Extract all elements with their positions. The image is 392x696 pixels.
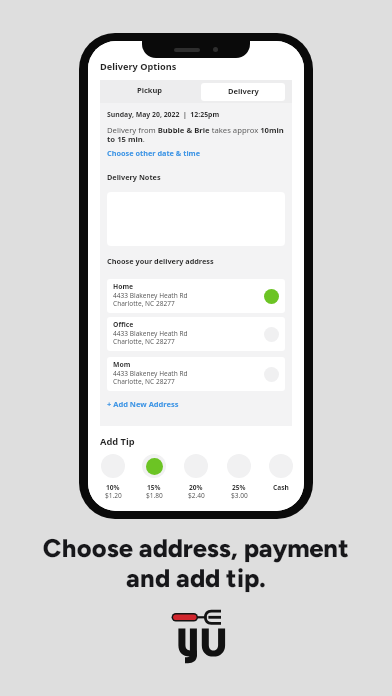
button[interactable]: + Add New Address xyxy=(107,399,179,409)
button[interactable]: Delivery xyxy=(201,83,285,101)
staticText: 20% xyxy=(189,483,203,492)
button[interactable]: Cash xyxy=(264,454,298,502)
staticText: 4433 Blakeney Heath Rd Charlotte, NC 282… xyxy=(113,369,188,386)
button[interactable]: 15% xyxy=(137,454,171,502)
button[interactable]: 25% xyxy=(222,454,256,502)
button[interactable]: Office xyxy=(107,317,285,351)
staticText: Home xyxy=(113,282,134,291)
button[interactable]: 20% xyxy=(179,454,213,502)
button[interactable]: 10% xyxy=(96,454,130,502)
staticText: Cash xyxy=(273,483,289,492)
staticText: 4433 Blakeney Heath Rd Charlotte, NC 282… xyxy=(113,291,188,308)
staticText: Office xyxy=(113,320,134,329)
staticText: $3.00 xyxy=(231,491,248,500)
button[interactable]: Delivery Options xyxy=(100,60,177,73)
staticText: Choose your delivery address xyxy=(107,256,214,266)
other: yu logo xyxy=(170,605,224,627)
staticText: 15% xyxy=(147,483,161,492)
button[interactable]: Pickup xyxy=(100,80,200,103)
staticText: Delivery from Bubble & Brie takes approx… xyxy=(107,125,287,145)
button[interactable]: Mom xyxy=(107,357,285,391)
staticText: $1.20 xyxy=(105,491,122,500)
button[interactable]: Home xyxy=(107,279,285,313)
staticText: 10% xyxy=(106,483,120,492)
staticText: Mom xyxy=(113,360,131,369)
staticText: $1.80 xyxy=(146,491,163,500)
staticText: 4433 Blakeney Heath Rd Charlotte, NC 282… xyxy=(113,329,188,346)
staticText: $2.40 xyxy=(188,491,205,500)
staticText: 25% xyxy=(232,483,246,492)
staticText: Pickup xyxy=(137,85,163,95)
staticText: Delivery Notes xyxy=(107,172,161,182)
button[interactable]: Choose other date & time xyxy=(107,148,201,158)
staticText: Sunday, May 20, 2022 | 12:25pm xyxy=(107,110,220,119)
staticText: Add Tip xyxy=(100,435,135,448)
staticText: Delivery xyxy=(228,86,259,96)
